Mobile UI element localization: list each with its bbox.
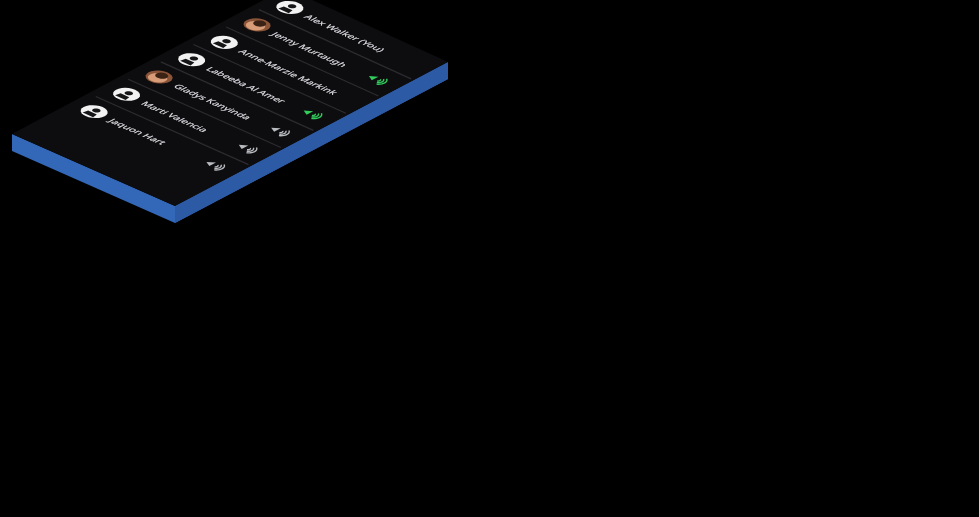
button[interactable]: Call participants list on a tilted phone [0, 0, 979, 517]
